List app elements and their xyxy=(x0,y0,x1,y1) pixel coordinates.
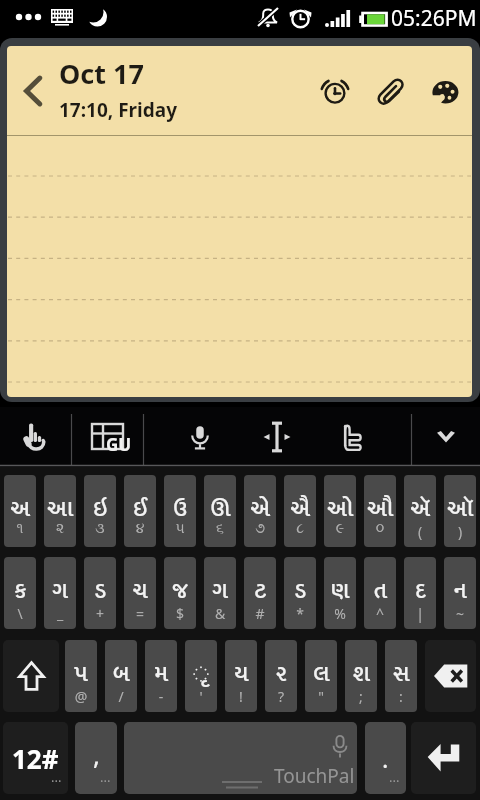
button[interactable]: Back xyxy=(7,46,53,135)
button[interactable]: ઐ xyxy=(284,475,316,547)
button[interactable]: Space xyxy=(124,722,357,794)
staticText: ૭ xyxy=(244,522,276,536)
button[interactable]: ૃ xyxy=(185,640,217,712)
button[interactable]: , xyxy=(75,722,117,794)
button[interactable]: ચ xyxy=(124,557,156,629)
staticText: ર xyxy=(265,655,297,693)
button[interactable]: . xyxy=(365,722,406,794)
button[interactable]: દ xyxy=(404,557,436,629)
staticText: ડ xyxy=(84,572,116,610)
staticText: ચ xyxy=(124,572,156,610)
button[interactable]: ડ xyxy=(284,557,316,629)
staticText: સ xyxy=(385,655,417,693)
button[interactable]: ગ xyxy=(204,557,236,629)
staticText: @ xyxy=(65,687,97,706)
button[interactable]: ઑ xyxy=(444,475,476,547)
staticText: ૪ xyxy=(124,522,156,536)
staticText: , xyxy=(93,737,100,772)
button[interactable]: ઓ xyxy=(324,475,356,547)
staticText: જ xyxy=(164,572,196,610)
button[interactable]: Handwriting xyxy=(0,407,71,467)
button[interactable]: Reminder xyxy=(307,63,362,118)
staticText: ૬ xyxy=(204,522,236,536)
button[interactable]: ડ xyxy=(84,557,116,629)
button[interactable] xyxy=(7,135,472,397)
button[interactable]: Shift xyxy=(3,640,59,712)
button[interactable]: ર xyxy=(265,640,297,712)
staticText: ઉ xyxy=(164,490,196,528)
button[interactable]: આ xyxy=(44,475,76,547)
button[interactable]: Move cursor xyxy=(256,407,297,467)
staticText: શ xyxy=(345,655,377,693)
button[interactable]: ઍ xyxy=(404,475,436,547)
button[interactable]: ટ xyxy=(244,557,276,629)
staticText: _ xyxy=(44,604,76,623)
staticText: ! xyxy=(225,687,257,706)
staticText: 05:26PM xyxy=(391,4,477,33)
button[interactable]: Backspace xyxy=(425,640,476,712)
staticText: ટ xyxy=(244,572,276,610)
staticText: ૧ xyxy=(4,522,36,536)
staticText: \ xyxy=(4,604,36,623)
staticText: દ xyxy=(404,572,436,610)
button[interactable]: ઇ xyxy=(84,475,116,547)
staticText: ૦ xyxy=(364,522,396,536)
button[interactable]: Attach xyxy=(362,63,417,118)
staticText: ઊ xyxy=(204,490,236,528)
staticText: ત xyxy=(364,572,396,610)
button[interactable]: ણ xyxy=(324,557,356,629)
button[interactable]: ઔ xyxy=(364,475,396,547)
staticText: ગ xyxy=(44,572,76,610)
staticText: Oct 17 xyxy=(59,55,144,92)
staticText: ૫ xyxy=(164,522,196,536)
button[interactable]: બ xyxy=(105,640,137,712)
staticText: ઐ xyxy=(284,490,316,528)
button[interactable]: શ xyxy=(345,640,377,712)
button[interactable]: Emoji xyxy=(314,407,389,467)
button[interactable]: સ xyxy=(385,640,417,712)
button[interactable]: ક xyxy=(4,557,36,629)
staticText: 12# xyxy=(12,741,59,776)
staticText: - xyxy=(145,687,177,706)
button[interactable]: પ xyxy=(65,640,97,712)
button[interactable]: ય xyxy=(225,640,257,712)
button[interactable]: Enter xyxy=(411,722,476,794)
button[interactable]: 12# xyxy=(3,722,68,794)
staticText: + xyxy=(84,604,116,623)
staticText: ૨ xyxy=(44,522,76,536)
staticText: ... xyxy=(51,768,62,786)
staticText: લ xyxy=(305,655,337,693)
staticText: પ xyxy=(65,655,97,693)
button[interactable]: Theme xyxy=(417,63,472,118)
staticText: $ xyxy=(164,604,196,623)
button[interactable]: અ xyxy=(4,475,36,547)
staticText: ઍ xyxy=(404,490,436,528)
button[interactable]: જ xyxy=(164,557,196,629)
staticText: ઓ xyxy=(324,490,356,528)
staticText: ? xyxy=(265,687,297,706)
staticText: ... xyxy=(100,768,111,786)
staticText: 17:10, Friday xyxy=(59,97,178,123)
staticText: ક xyxy=(4,572,36,610)
button[interactable]: ઊ xyxy=(204,475,236,547)
button[interactable]: Voice input xyxy=(144,407,256,467)
button[interactable]: લ xyxy=(305,640,337,712)
button[interactable]: Keyboard layout Gujarati xyxy=(72,407,143,467)
button[interactable]: ગ xyxy=(44,557,76,629)
button[interactable]: ઉ xyxy=(164,475,196,547)
button[interactable]: ત xyxy=(364,557,396,629)
button[interactable]: ઈ xyxy=(124,475,156,547)
button[interactable]: Hide keyboard xyxy=(412,407,480,467)
staticText: ૯ xyxy=(324,522,356,536)
staticText: | xyxy=(404,604,436,623)
staticText: ( xyxy=(404,522,436,541)
staticText: એ xyxy=(244,490,276,528)
staticText: ૃ xyxy=(185,655,217,693)
button[interactable]: એ xyxy=(244,475,276,547)
staticText: ઇ xyxy=(84,490,116,528)
staticText: મ xyxy=(145,655,177,693)
button[interactable]: મ xyxy=(145,640,177,712)
staticText: ઔ xyxy=(364,490,396,528)
button[interactable]: ન xyxy=(444,557,476,629)
staticText: ડ xyxy=(284,572,316,610)
